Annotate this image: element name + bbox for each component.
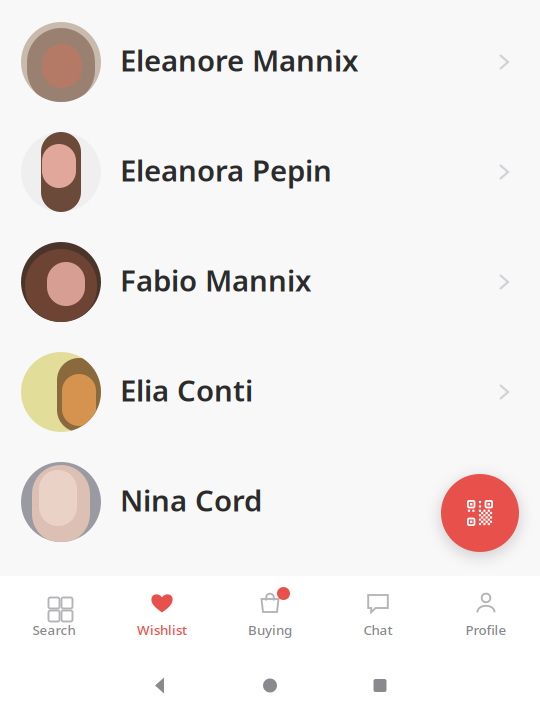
staticText: Eleanore Mannix xyxy=(120,40,358,79)
button[interactable]: Recents xyxy=(325,655,435,716)
button[interactable]: Fabio Mannix xyxy=(0,227,540,337)
staticText: Fabio Mannix xyxy=(120,260,311,299)
button[interactable]: Buying xyxy=(216,576,324,655)
button[interactable]: Back xyxy=(105,655,215,716)
staticText: Wishlist xyxy=(137,621,187,639)
staticText: Search xyxy=(32,621,75,639)
button[interactable]: Scan QR code xyxy=(441,474,519,552)
button[interactable]: Wishlist xyxy=(108,576,216,655)
button[interactable]: Eleanore Mannix xyxy=(0,7,540,117)
button[interactable]: Profile xyxy=(432,576,540,655)
staticText: Nina Cord xyxy=(120,480,262,519)
staticText: Chat xyxy=(363,621,392,639)
button[interactable]: Nina Cord xyxy=(0,447,540,557)
button[interactable]: Elia Conti xyxy=(0,337,540,447)
button[interactable]: Search xyxy=(0,576,108,655)
staticText: Profile xyxy=(465,621,506,639)
staticText: Elia Conti xyxy=(120,370,253,409)
button[interactable]: Home xyxy=(215,655,325,716)
staticText: Buying xyxy=(248,621,292,639)
staticText: Eleanora Pepin xyxy=(120,150,332,189)
button[interactable]: Chat xyxy=(324,576,432,655)
button[interactable]: Eleanora Pepin xyxy=(0,117,540,227)
